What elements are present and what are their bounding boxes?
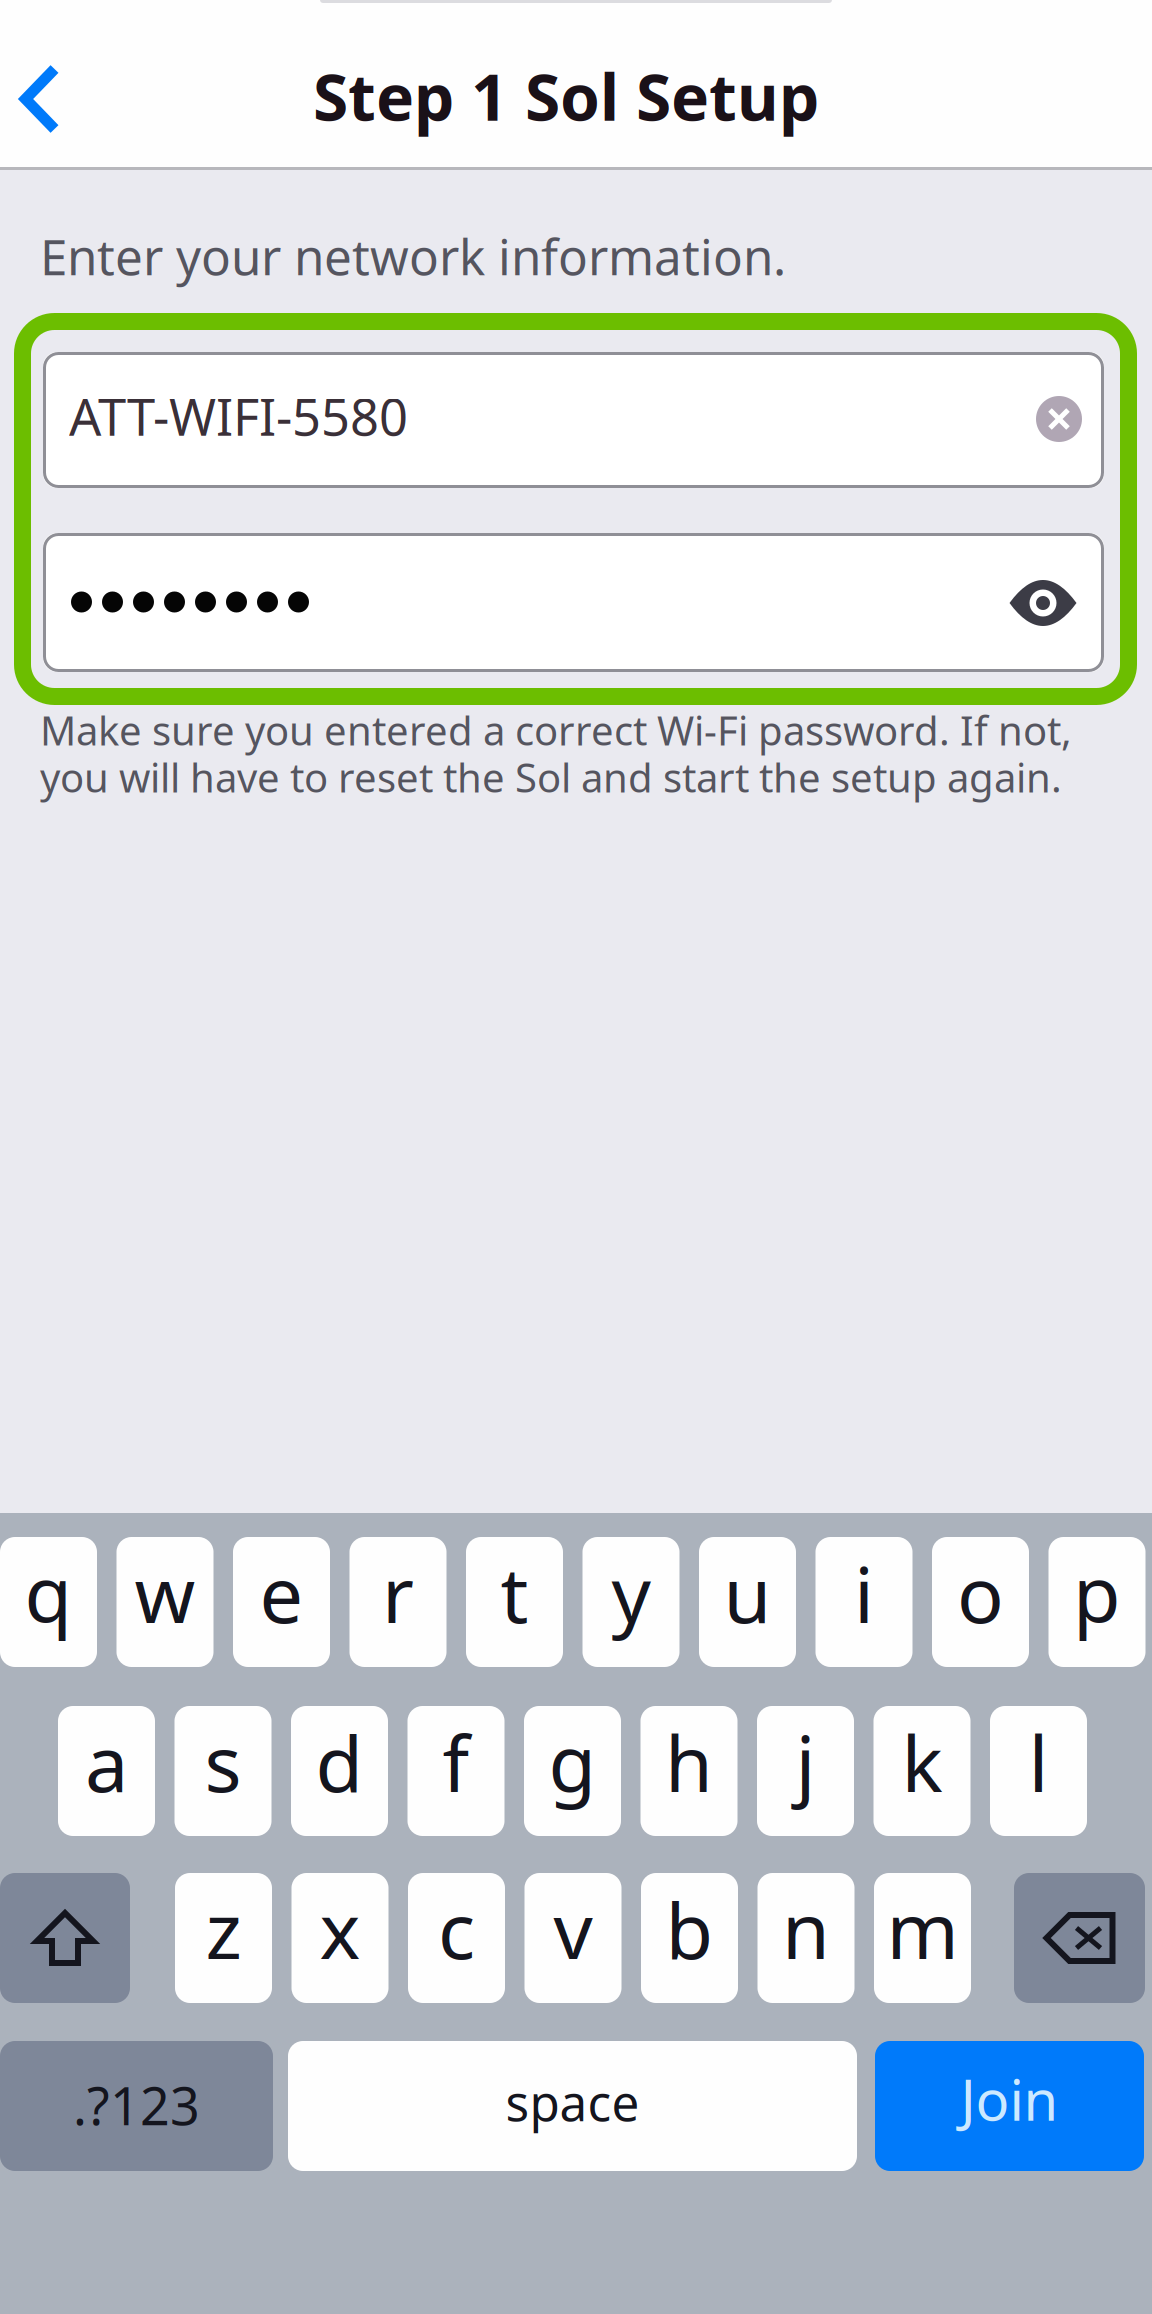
button[interactable]: Join (875, 2041, 1144, 2171)
staticText: m (886, 1878, 958, 1980)
staticText: z (205, 1878, 241, 1980)
button[interactable]: f (407, 1706, 504, 1836)
button[interactable]: s (174, 1706, 271, 1836)
button[interactable]: e (233, 1537, 330, 1667)
button[interactable]: d (291, 1706, 388, 1836)
button[interactable]: n (757, 1873, 854, 2003)
staticText: y (611, 1542, 650, 1644)
staticText: r (382, 1542, 414, 1644)
staticText: t (500, 1542, 528, 1644)
button[interactable]: Clear text (1017, 377, 1101, 461)
button[interactable]: .?123 (0, 2041, 273, 2171)
button[interactable]: Delete (1014, 1873, 1145, 2003)
staticText: b (665, 1878, 713, 1980)
button[interactable]: j (757, 1706, 854, 1836)
button[interactable]: r (349, 1537, 446, 1667)
button[interactable]: v (524, 1873, 621, 2003)
staticText: o (957, 1542, 1004, 1644)
staticText: ATT-WIFI-5580 (69, 382, 408, 450)
button[interactable]: g (524, 1706, 621, 1836)
button[interactable]: o (932, 1537, 1029, 1667)
button[interactable]: a (58, 1706, 155, 1836)
button[interactable]: k (873, 1706, 970, 1836)
button[interactable]: h (640, 1706, 737, 1836)
staticText: space (505, 2069, 639, 2135)
staticText: w (134, 1542, 195, 1644)
button[interactable]: l (990, 1706, 1087, 1836)
staticText: v (553, 1878, 592, 1980)
staticText: Make sure you entered a correct Wi-Fi pa… (40, 703, 1072, 756)
staticText: d (315, 1711, 363, 1813)
staticText: g (548, 1711, 596, 1813)
staticText: f (442, 1711, 469, 1813)
staticText: s (204, 1711, 241, 1813)
button[interactable]: p (1048, 1537, 1145, 1667)
staticText: l (1028, 1711, 1048, 1813)
button[interactable]: i (815, 1537, 912, 1667)
staticText: x (319, 1878, 360, 1980)
staticText: Step 1 Sol Setup (313, 53, 819, 138)
button[interactable]: space (288, 2041, 857, 2171)
staticText: e (259, 1542, 303, 1644)
button[interactable]: y (582, 1537, 679, 1667)
staticText: p (1073, 1542, 1121, 1644)
button[interactable]: t (466, 1537, 563, 1667)
button[interactable]: z (175, 1873, 272, 2003)
button[interactable]: Shift (0, 1873, 130, 2003)
staticText: j (795, 1711, 815, 1813)
button[interactable]: c (408, 1873, 505, 2003)
button[interactable]: Show password (997, 557, 1089, 649)
staticText: h (665, 1711, 713, 1813)
button[interactable]: Password (43, 533, 1104, 672)
button[interactable]: b (641, 1873, 738, 2003)
button[interactable]: q (0, 1537, 97, 1667)
button[interactable]: u (699, 1537, 796, 1667)
button[interactable]: w (116, 1537, 213, 1667)
staticText: you will have to reset the Sol and start… (40, 750, 1062, 803)
staticText: a (85, 1711, 128, 1813)
staticText: .?123 (73, 2070, 200, 2140)
button[interactable]: ATT-WIFI-5580 (43, 352, 1104, 488)
staticText: c (438, 1878, 475, 1980)
button[interactable]: m (874, 1873, 971, 2003)
staticText: Enter your network information. (40, 223, 786, 289)
button[interactable]: x (291, 1873, 388, 2003)
staticText: k (901, 1711, 942, 1813)
staticText: Join (960, 2062, 1058, 2136)
staticText: n (782, 1878, 830, 1980)
staticText: q (24, 1542, 72, 1644)
button[interactable]: Back (0, 40, 83, 158)
staticText: i (854, 1542, 874, 1644)
staticText: u (723, 1542, 771, 1644)
